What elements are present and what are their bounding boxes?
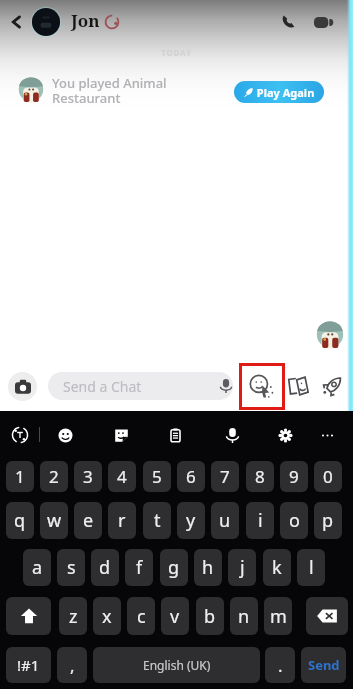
button[interactable]: a <box>23 549 51 586</box>
button[interactable]: e <box>74 502 102 539</box>
button[interactable]: Send <box>301 647 346 683</box>
button[interactable]: 2 <box>40 461 68 492</box>
button[interactable]: 0 <box>314 461 342 492</box>
button[interactable]: Settings <box>272 422 298 448</box>
button[interactable]: Voice message <box>212 372 240 400</box>
button[interactable]: f <box>125 549 153 586</box>
staticText: Send <box>308 656 340 674</box>
staticText: f <box>136 555 143 580</box>
staticText: x <box>102 604 112 629</box>
staticText: s <box>67 555 76 580</box>
staticText: . <box>278 654 283 677</box>
staticText: 4 <box>117 465 127 488</box>
staticText: a <box>32 555 43 580</box>
staticText: 9 <box>289 465 299 488</box>
button[interactable]: n <box>230 597 258 635</box>
button[interactable]: 6 <box>177 461 205 492</box>
button[interactable]: Games <box>318 372 346 400</box>
button[interactable]: t <box>143 502 171 539</box>
staticText: 5 <box>152 465 162 488</box>
staticText: Send a Chat <box>63 377 142 396</box>
button[interactable]: j <box>228 549 256 586</box>
staticText: 0 <box>323 465 333 488</box>
button[interactable]: GIF <box>108 422 134 448</box>
staticText: m <box>270 604 287 629</box>
staticText: g <box>168 555 180 580</box>
staticText: 6 <box>186 465 196 488</box>
button[interactable]: Stickers <box>242 366 282 407</box>
button[interactable]: q <box>6 502 34 539</box>
staticText: h <box>202 555 214 580</box>
staticText: t <box>154 508 161 533</box>
staticText: e <box>83 508 94 533</box>
button[interactable]: 9 <box>280 461 308 492</box>
button[interactable]: Voice input <box>219 422 245 448</box>
button[interactable]: Back <box>2 8 30 36</box>
button[interactable] <box>306 597 348 635</box>
button[interactable]: 1 <box>6 461 34 492</box>
button[interactable]: g <box>160 549 188 586</box>
button[interactable]: x <box>93 597 121 635</box>
button[interactable]: Cameos <box>284 372 312 400</box>
button[interactable]: 4 <box>108 461 136 492</box>
button[interactable]: Camera <box>8 372 37 401</box>
button[interactable]: Profile <box>30 6 62 38</box>
staticText: q <box>14 508 26 533</box>
button[interactable]: y <box>177 502 205 539</box>
staticText: n <box>238 604 250 629</box>
staticText: i <box>258 508 263 533</box>
button[interactable]: i <box>246 502 274 539</box>
button[interactable]: 7 <box>211 461 239 492</box>
button[interactable]: k <box>263 549 291 586</box>
button[interactable]: Video call <box>310 8 338 36</box>
button[interactable]: s <box>57 549 85 586</box>
button[interactable]: 5 <box>143 461 171 492</box>
button[interactable]: !#1 <box>6 647 51 683</box>
button[interactable]: o <box>280 502 308 539</box>
button[interactable]: d <box>91 549 119 586</box>
staticText: y <box>186 508 196 533</box>
button[interactable] <box>6 597 51 635</box>
button[interactable]: u <box>211 502 239 539</box>
button[interactable]: z <box>59 597 87 635</box>
staticText: l <box>309 555 314 580</box>
staticText: , <box>70 654 75 677</box>
button[interactable]: p <box>314 502 342 539</box>
button[interactable]: v <box>161 597 189 635</box>
button[interactable]: m <box>264 597 292 635</box>
staticText: d <box>99 555 111 580</box>
button[interactable]: Emoji <box>52 422 78 448</box>
staticText: Play Again <box>254 85 315 100</box>
button[interactable]: w <box>40 502 68 539</box>
button[interactable]: Clipboard <box>162 422 188 448</box>
button[interactable]: r <box>108 502 136 539</box>
button[interactable]: Send a Chat <box>48 372 233 400</box>
staticText: r <box>118 508 126 533</box>
staticText: 7 <box>220 465 230 488</box>
button[interactable]: Translate <box>7 422 33 448</box>
staticText: z <box>69 604 78 629</box>
button[interactable]: c <box>127 597 155 635</box>
button[interactable]: More <box>314 422 340 448</box>
staticText: b <box>204 604 216 629</box>
button[interactable]: h <box>194 549 222 586</box>
button[interactable]: 8 <box>246 461 274 492</box>
button[interactable]: Play Again <box>234 81 324 103</box>
button[interactable]: 3 <box>74 461 102 492</box>
staticText: k <box>272 555 282 580</box>
button[interactable]: b <box>196 597 224 635</box>
staticText: v <box>170 604 180 629</box>
staticText: o <box>289 508 300 533</box>
staticText: 2 <box>49 465 59 488</box>
staticText: j <box>240 555 245 580</box>
button[interactable]: . <box>265 647 295 683</box>
button[interactable]: Call <box>274 8 302 36</box>
button[interactable]: English (UK) <box>93 647 260 683</box>
staticText: TODAY <box>0 47 353 58</box>
button[interactable]: , <box>57 647 87 683</box>
staticText: p <box>322 508 334 533</box>
staticText: Jon <box>71 9 100 32</box>
staticText: You played Animal Restaurant <box>52 74 167 107</box>
button[interactable]: l <box>297 549 325 586</box>
staticText: !#1 <box>17 655 40 675</box>
